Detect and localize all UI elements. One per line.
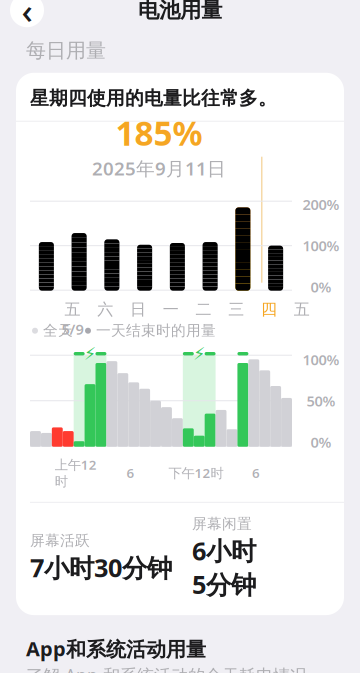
staticText: 100% (302, 236, 339, 255)
staticText: 三 (228, 300, 244, 319)
staticText: 6 (252, 464, 260, 482)
staticText: 一 (163, 300, 179, 319)
staticText: 全天 (43, 322, 73, 340)
staticText: 7小时30分钟 (30, 551, 172, 584)
staticText: 屏幕闲置 (192, 515, 252, 533)
staticText: 0% (310, 277, 331, 297)
staticText: 5/9 (61, 319, 83, 339)
staticText: App和系统活动用量 (26, 635, 206, 662)
staticText: ‹ (21, 0, 32, 33)
staticText: ⚡︎ (84, 344, 96, 364)
staticText: 每日用量 (26, 38, 106, 63)
staticText: 下午12时 (168, 464, 223, 482)
staticText: 日 (130, 300, 146, 319)
staticText: 6 (126, 464, 134, 482)
staticText: 星期四使用的电量比往常多。 (30, 87, 277, 110)
staticText: 2025年9月11日 (92, 156, 226, 181)
staticText: 100% (302, 350, 339, 369)
staticText: 50% (306, 391, 335, 410)
staticText: 185% (115, 111, 202, 155)
staticText: 上午12时 (55, 456, 97, 490)
staticText: 屏幕活跃 (30, 532, 90, 550)
staticText: 0% (310, 432, 331, 452)
button[interactable]: 返回 (10, 0, 44, 27)
staticText: 了解 App 和系统活动的全天耗电情况。 (26, 664, 324, 673)
staticText: ⚡︎ (193, 344, 205, 364)
staticText: 电池用量 (138, 0, 222, 23)
staticText: 二 (195, 300, 211, 319)
staticText: 一天结束时的用量 (96, 322, 216, 340)
staticText: 四 (261, 300, 277, 319)
staticText: 六 (97, 300, 113, 319)
staticText: 200% (302, 195, 339, 214)
staticText: 五 (64, 300, 80, 319)
staticText: 6小时5分钟 (192, 534, 256, 601)
staticText: 五 (294, 300, 310, 319)
